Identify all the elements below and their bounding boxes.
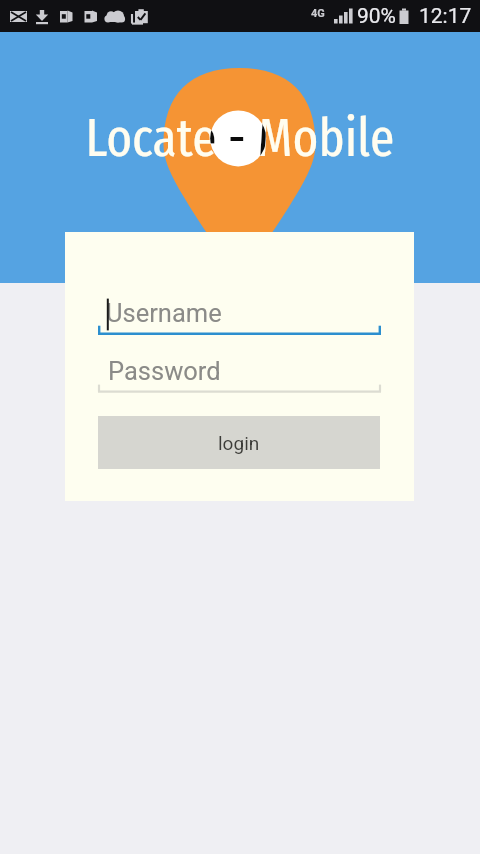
- button[interactable]: Password: [98, 352, 381, 400]
- staticText: Password: [108, 356, 221, 386]
- staticText: 12:17: [419, 4, 472, 29]
- staticText: 4G: [311, 7, 325, 20]
- staticText: 90%: [357, 4, 396, 29]
- staticText: Username: [106, 298, 222, 328]
- button[interactable]: login: [98, 416, 380, 469]
- button[interactable]: Username: [98, 294, 381, 342]
- staticText: login: [218, 432, 260, 454]
